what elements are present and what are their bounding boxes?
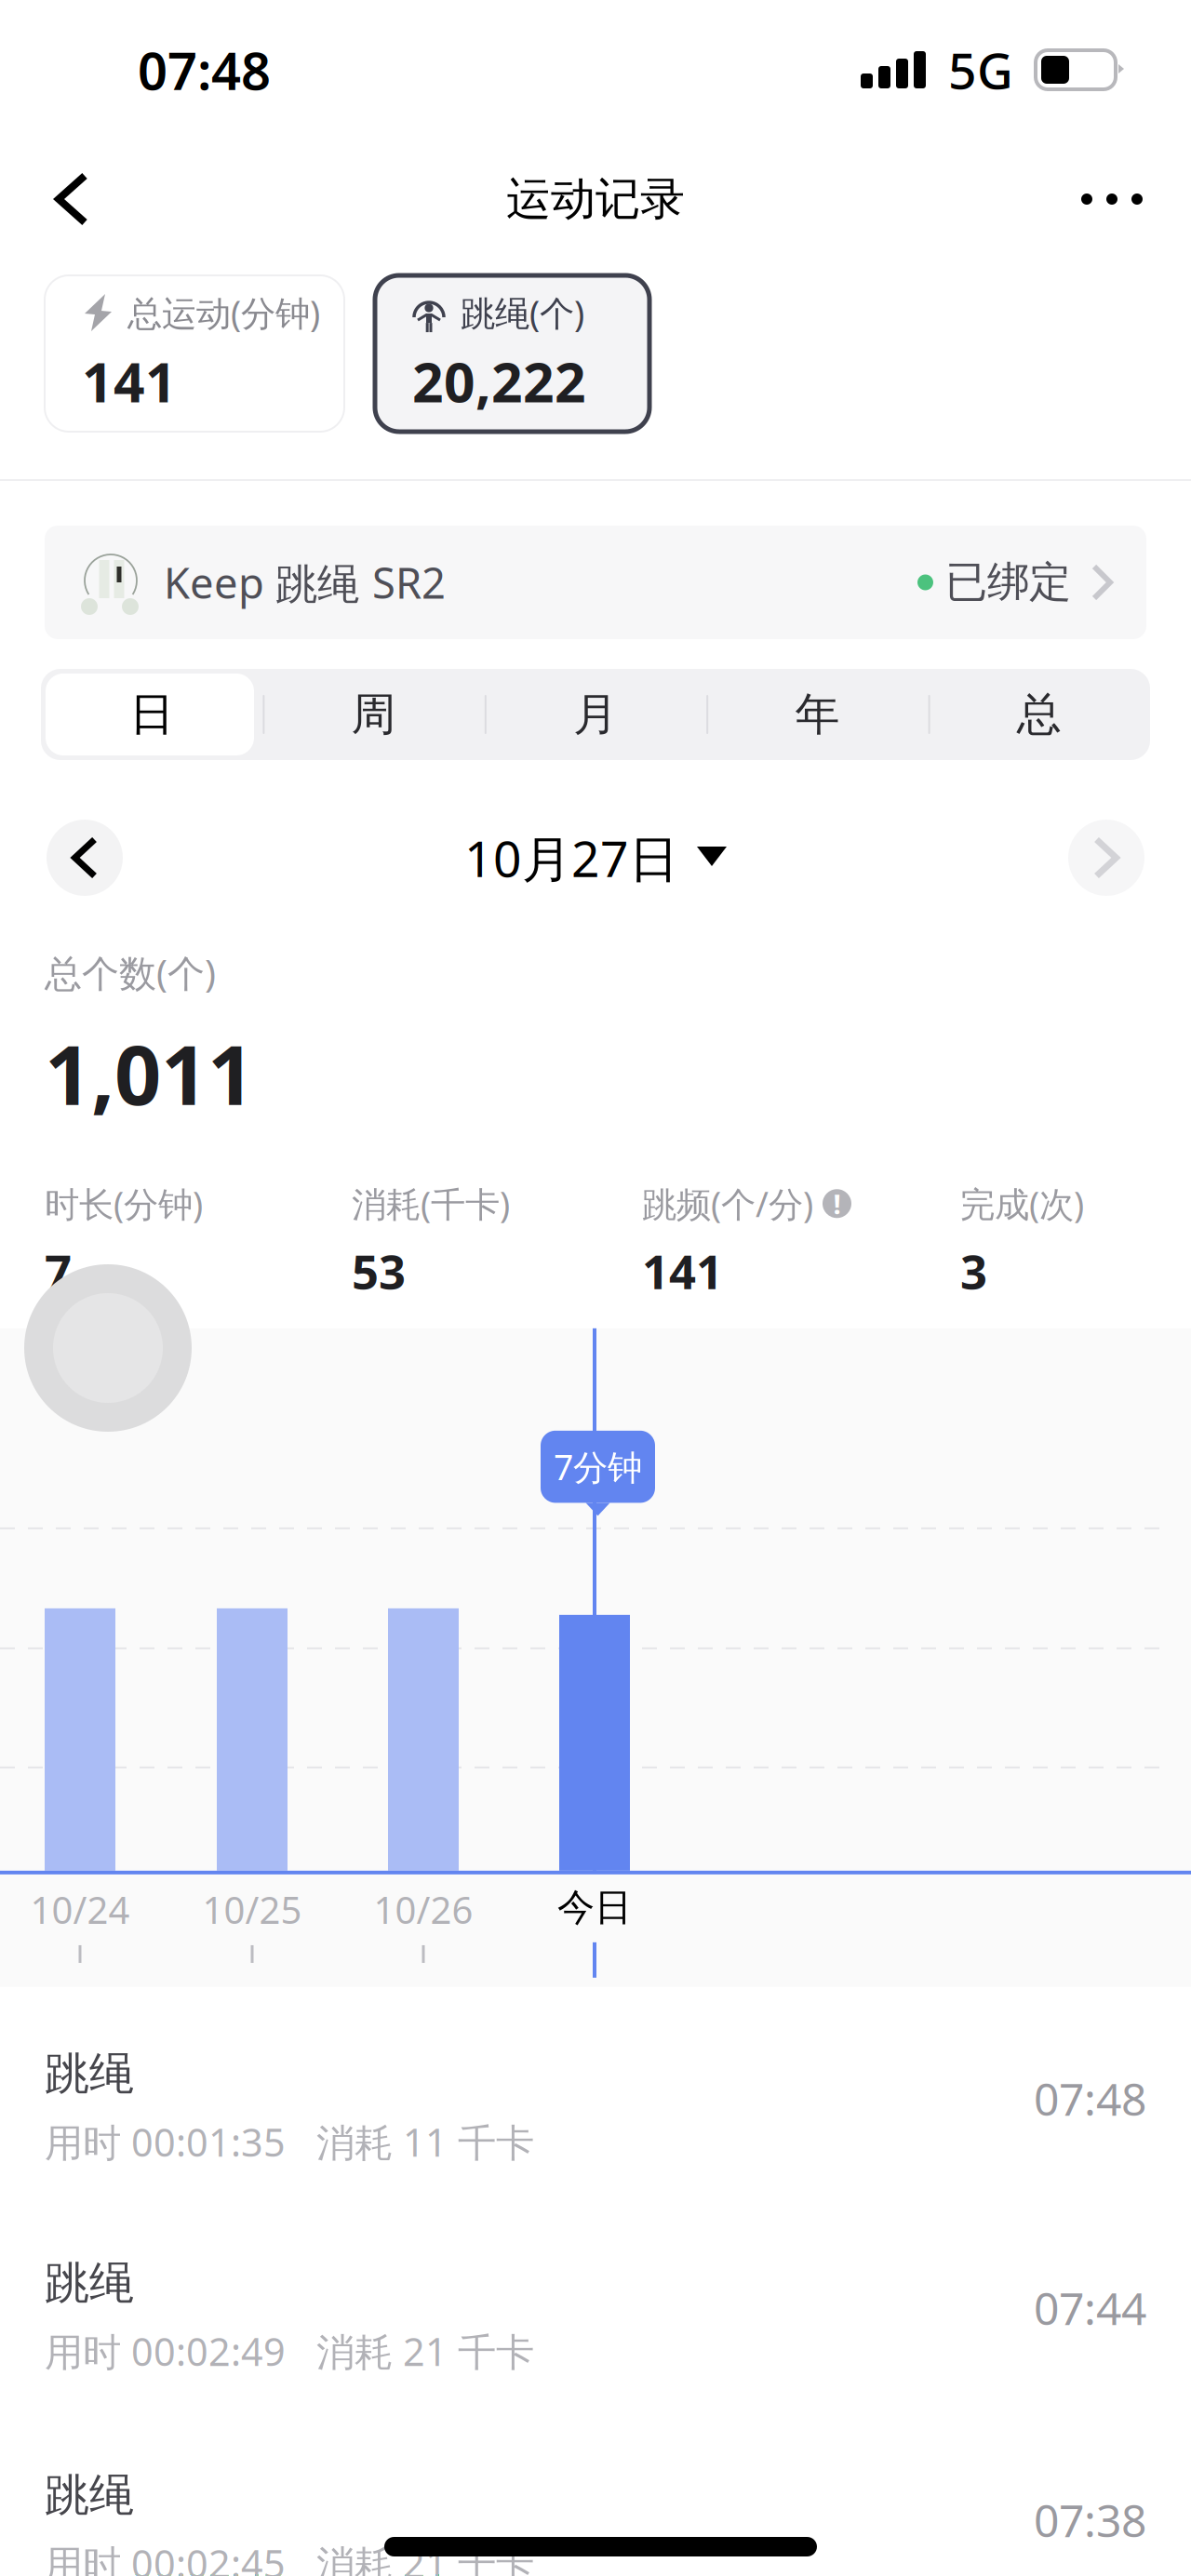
staticText: 已绑定 [945, 557, 1071, 608]
button[interactable]: 上一天 [47, 820, 123, 896]
staticText: 7分钟 [554, 1444, 642, 1490]
staticText: 07:38 [1034, 2490, 1146, 2549]
staticText: 周 [351, 687, 396, 742]
staticText: 今日 [557, 1885, 632, 1930]
staticText: 用时 00:02:49 消耗 21 千卡 [45, 2326, 534, 2377]
staticText: 总个数(个) [45, 948, 216, 997]
staticText: 用时 00:02:45 消耗 21 千卡 [45, 2538, 534, 2576]
staticText: 10/26 [374, 1885, 473, 1934]
staticText: 跳绳 [45, 2046, 134, 2101]
button[interactable]: 下一天 [1068, 820, 1144, 896]
button[interactable]: 周 [263, 669, 485, 760]
staticText: 跳绳 [45, 2256, 134, 2311]
staticText: 1,011 [45, 1019, 254, 1128]
staticText: 5G [948, 37, 1013, 103]
staticText: Keep 跳绳 SR2 [164, 554, 446, 610]
staticText: 年 [795, 687, 840, 742]
staticText: 消耗(千卡) [352, 1181, 510, 1227]
button[interactable]: Keep 跳绳 SR2 [45, 526, 1146, 639]
staticText: 07:48 [1034, 2069, 1146, 2128]
staticText: 53 [352, 1240, 406, 1302]
staticText: 日 [130, 687, 174, 742]
staticText: 20,222 [412, 345, 586, 417]
staticText: 时长(分钟) [45, 1181, 203, 1227]
staticText: 总 [1017, 687, 1061, 742]
staticText: 跳绳 [45, 2468, 134, 2523]
button[interactable]: 跳绳 [0, 2214, 1191, 2426]
button[interactable]: 10月27日 [449, 820, 742, 896]
button[interactable]: 更多 [1061, 148, 1163, 250]
staticText: ! [833, 1185, 841, 1222]
staticText: 7 [45, 1240, 72, 1302]
staticText: 10/25 [202, 1885, 302, 1934]
button[interactable]: 月 [485, 669, 706, 760]
staticText: 运动记录 [506, 172, 685, 227]
staticText: 10月27日 [464, 825, 678, 891]
staticText: 用时 00:01:35 消耗 11 千卡 [45, 2116, 534, 2167]
staticText: 月 [573, 687, 618, 742]
button[interactable]: 跳绳(个) [375, 275, 649, 432]
staticText: 总运动(分钟) [127, 290, 320, 336]
button[interactable]: 总 [928, 669, 1150, 760]
button[interactable]: 年 [706, 669, 928, 760]
staticText: 07:48 [138, 35, 271, 104]
staticText: 3 [960, 1240, 987, 1302]
staticText: 跳绳(个) [461, 290, 584, 336]
button[interactable]: 返回 [20, 148, 123, 250]
staticText: 141 [642, 1240, 723, 1302]
button[interactable]: 跳绳 [0, 2005, 1191, 2214]
staticText: 07:44 [1034, 2278, 1146, 2337]
button[interactable]: 日 [41, 669, 263, 760]
button[interactable]: 总运动(分钟) [45, 275, 344, 432]
staticText: 完成(次) [960, 1181, 1084, 1227]
staticText: 10/24 [30, 1885, 130, 1934]
staticText: 141 [82, 345, 177, 417]
staticText: 跳频(个/分) [642, 1181, 813, 1227]
button[interactable]: 跳绳 [0, 2426, 1191, 2574]
